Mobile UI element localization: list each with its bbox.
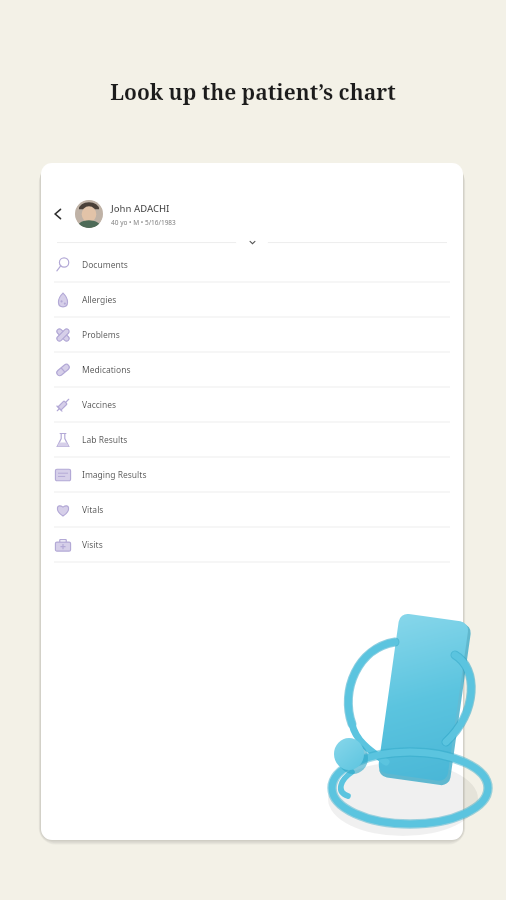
button[interactable]: Medications — [41, 353, 463, 387]
button[interactable]: Lab Results — [41, 423, 463, 457]
staticText: John ADACHI — [111, 202, 170, 215]
staticText: Problems — [82, 329, 120, 341]
staticText: Lab Results — [82, 434, 128, 446]
staticText: Vitals — [82, 504, 104, 516]
staticText: Visits — [82, 539, 103, 551]
staticText: 40 yo • M • 5/16/1983 — [111, 218, 176, 227]
button[interactable]: Imaging Results — [41, 458, 463, 492]
button[interactable]: Vaccines — [41, 388, 463, 422]
button[interactable]: Back — [41, 192, 75, 236]
button[interactable]: Expand patient details — [236, 236, 268, 248]
button[interactable]: Problems — [41, 318, 463, 352]
staticText: Documents — [82, 259, 128, 271]
button[interactable]: Visits — [41, 528, 463, 562]
staticText: Imaging Results — [82, 469, 147, 481]
button[interactable]: Documents — [41, 248, 463, 282]
button[interactable]: Vitals — [41, 493, 463, 527]
button[interactable]: Allergies — [41, 283, 463, 317]
staticText: Vaccines — [82, 399, 117, 411]
staticText: Allergies — [82, 294, 117, 306]
staticText: Look up the patient’s chart — [110, 78, 396, 107]
staticText: Medications — [82, 364, 131, 376]
